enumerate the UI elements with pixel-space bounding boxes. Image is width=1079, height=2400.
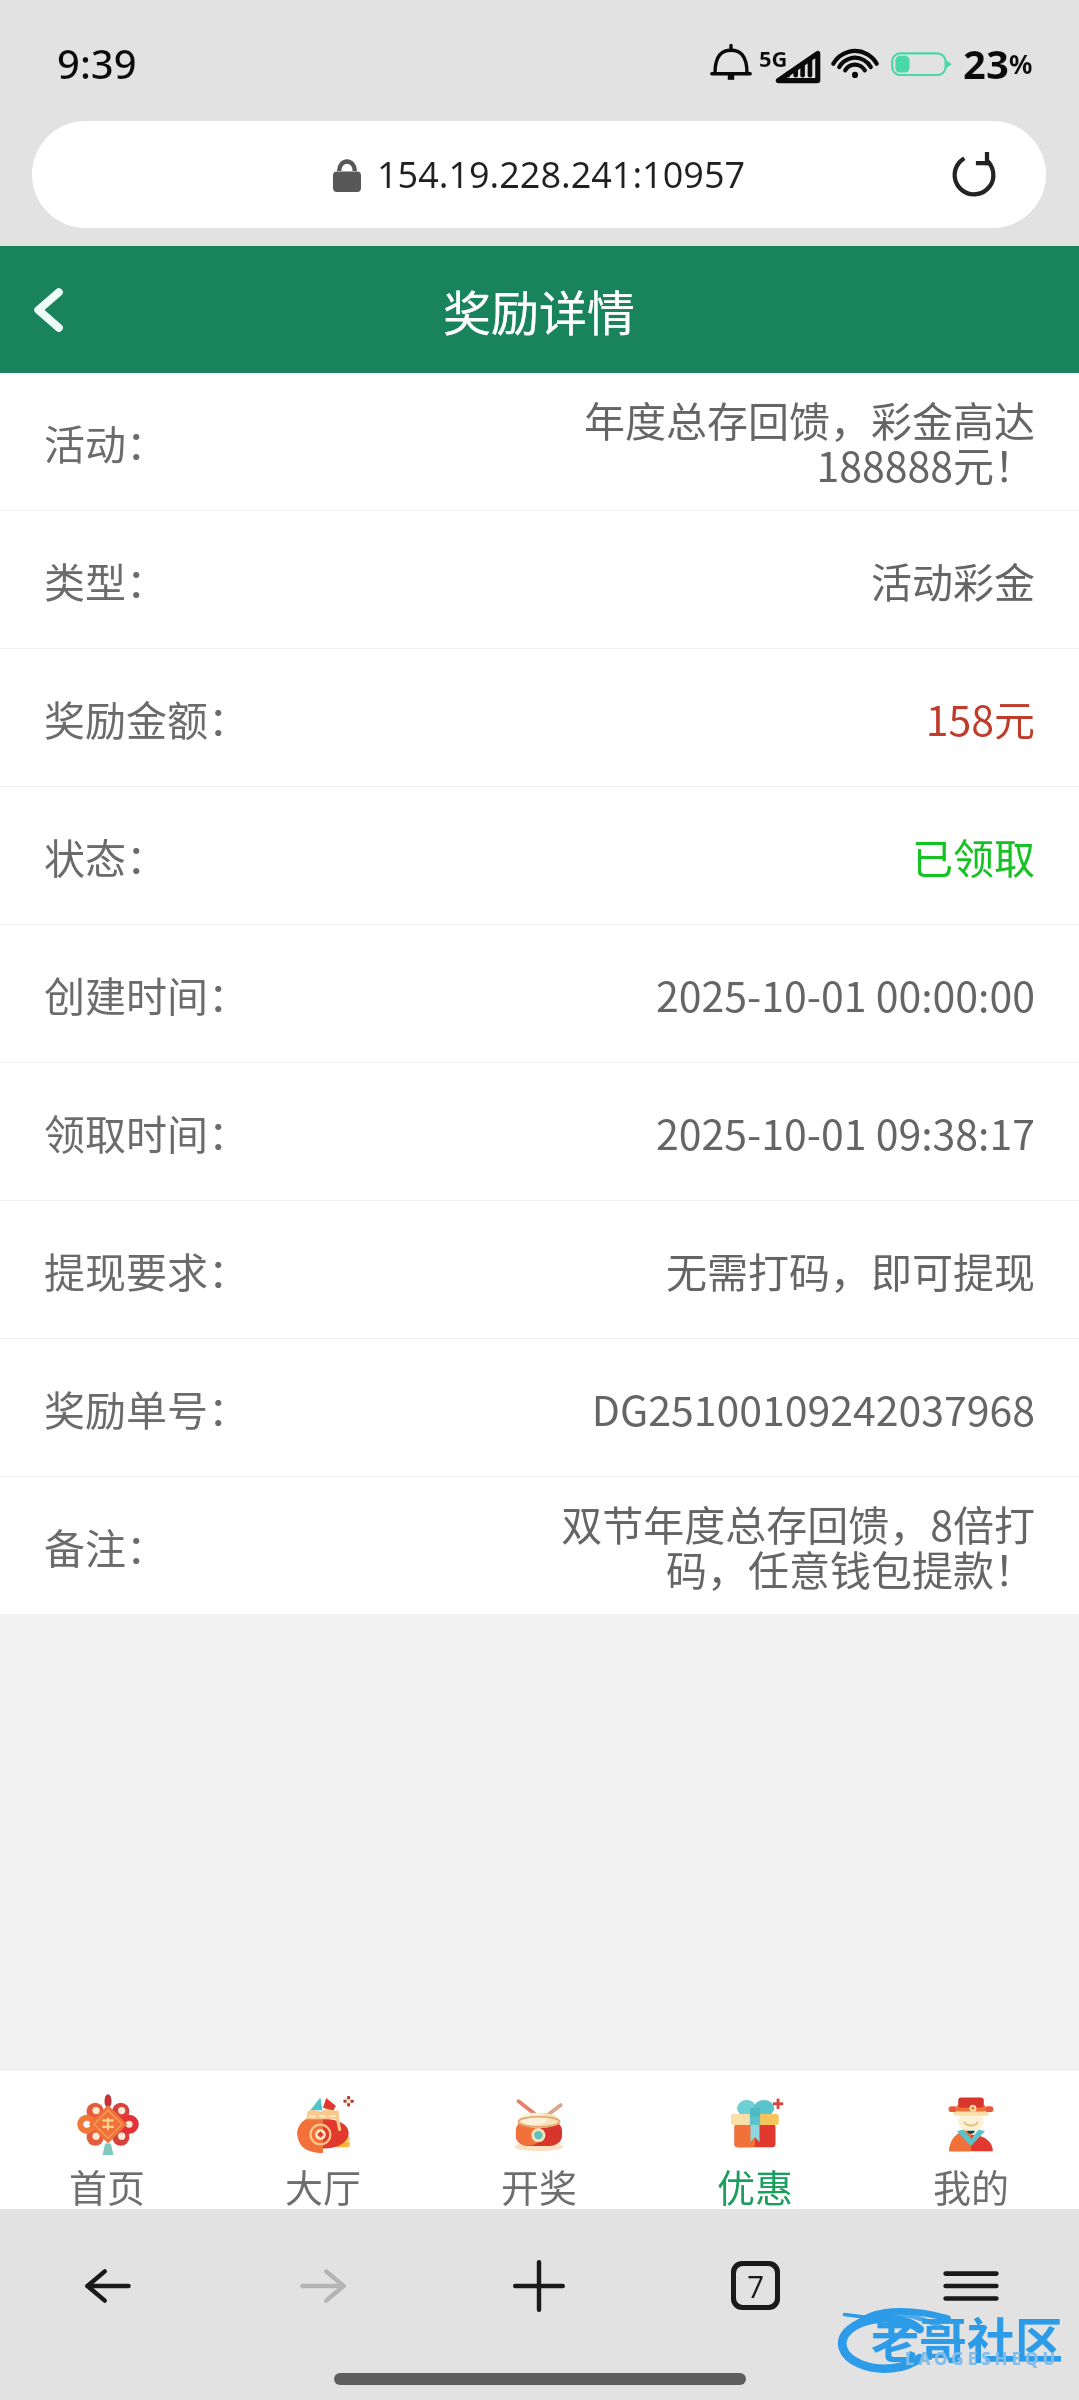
button[interactable]: New tab (431, 2209, 647, 2362)
staticText: 奖励详情 (443, 275, 636, 345)
staticText: 7 (747, 2266, 765, 2305)
staticText: 2025-10-01 00:00:00 (655, 964, 1035, 1023)
staticText: 优惠 (717, 2158, 794, 2209)
staticText: 提现要求： (44, 1240, 249, 1299)
staticText: 年度总存回馈，彩金高达 188888元！ (584, 389, 1035, 494)
button[interactable]: 领取时间： (0, 1063, 1079, 1201)
staticText: 创建时间： (44, 964, 249, 1023)
button[interactable]: 奖励金额： (0, 649, 1079, 787)
button[interactable]: 创建时间： (0, 925, 1079, 1063)
staticText: 开奖 (501, 2158, 578, 2209)
staticText: 首页 (69, 2158, 146, 2209)
staticText: LAOGESHEQU (905, 2347, 1060, 2370)
button[interactable]: 优惠 (647, 2071, 863, 2209)
button[interactable]: 类型： (0, 511, 1079, 649)
button[interactable]: 备注： (0, 1477, 1079, 1614)
button[interactable]: 提现要求： (0, 1201, 1079, 1339)
staticText: 老哥社区 (871, 2302, 1064, 2370)
staticText: 奖励单号： (44, 1378, 249, 1437)
button[interactable]: 大厅 (215, 2071, 431, 2209)
staticText: 状态： (44, 826, 167, 885)
staticText: 2025-10-01 09:38:17 (655, 1102, 1035, 1161)
button[interactable]: 开奖 (431, 2071, 647, 2209)
button[interactable]: Tabs (647, 2209, 863, 2362)
staticText: 双节年度总存回馈，8倍打 码，任意钱包提款！ (561, 1493, 1035, 1598)
staticText: 类型： (44, 550, 167, 609)
staticText: 大厅 (285, 2158, 362, 2209)
staticText: 无需打码，即可提现 (666, 1240, 1035, 1299)
button[interactable]: 首页 (0, 2071, 215, 2209)
button[interactable]: Back (0, 2209, 215, 2362)
button[interactable]: Reload (944, 145, 1004, 205)
staticText: 活动： (44, 412, 167, 471)
staticText: 158元 (925, 688, 1035, 747)
button[interactable]: Menu (863, 2209, 1079, 2362)
button[interactable]: 状态： (0, 787, 1079, 925)
staticText: 备注： (44, 1516, 167, 1575)
button[interactable]: 活动： (0, 373, 1079, 511)
staticText: DG25100109242037968 (591, 1378, 1035, 1437)
button[interactable]: Back (8, 270, 88, 350)
button[interactable]: Forward (215, 2209, 431, 2362)
staticText: 23 (963, 36, 1009, 90)
staticText: 154.19.228.241:10957 (377, 150, 746, 199)
staticText: 奖励金额： (44, 688, 249, 747)
staticText: % (1009, 46, 1033, 81)
staticText: 领取时间： (44, 1102, 249, 1161)
staticText: 已领取 (912, 826, 1035, 885)
button[interactable]: 我的 (863, 2071, 1079, 2209)
staticText: 我的 (933, 2158, 1010, 2209)
button[interactable]: 154.19.228.241:10957 (32, 121, 1046, 228)
staticText: 5G (759, 43, 788, 73)
staticText: 9:39 (57, 36, 137, 90)
staticText: 活动彩金 (871, 550, 1035, 609)
button[interactable]: 奖励单号： (0, 1339, 1079, 1477)
